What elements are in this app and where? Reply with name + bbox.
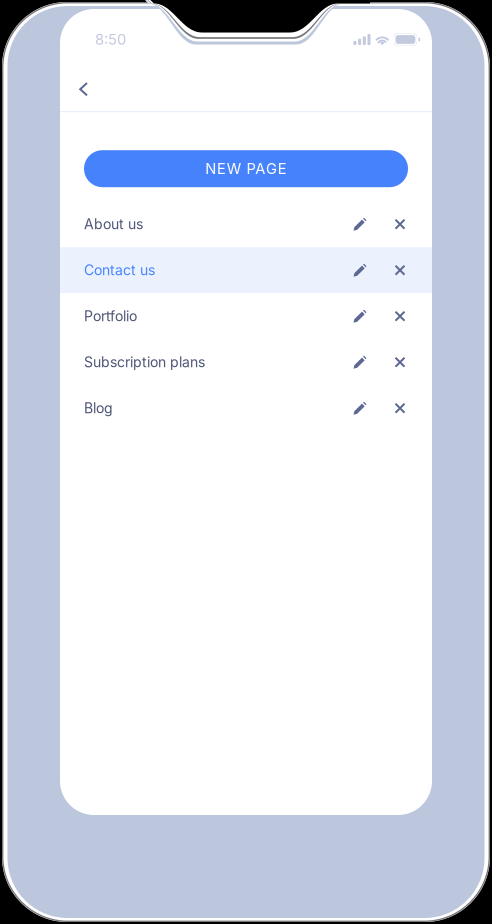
button[interactable]: Back (66, 70, 100, 108)
button[interactable]: About us (60, 201, 432, 247)
button[interactable]: Contact us (60, 247, 432, 293)
button[interactable]: Blog (60, 385, 432, 431)
button[interactable]: Subscription plans (60, 339, 432, 385)
button[interactable]: Delete Blog (380, 385, 420, 431)
staticText: Portfolio (84, 308, 137, 325)
staticText: Subscription plans (84, 354, 205, 371)
button[interactable]: Delete Subscription plans (380, 339, 420, 385)
button[interactable]: NEW PAGE (84, 150, 408, 187)
button[interactable]: Delete Portfolio (380, 293, 420, 339)
staticText: NEW PAGE (205, 160, 287, 177)
button[interactable]: Edit Blog (340, 385, 380, 431)
staticText: About us (84, 216, 143, 233)
button[interactable]: Delete About us (380, 201, 420, 247)
button[interactable]: Portfolio (60, 293, 432, 339)
button[interactable]: Edit Contact us (340, 247, 380, 293)
button[interactable]: Edit Subscription plans (340, 339, 380, 385)
staticText: 8:50 (95, 31, 126, 48)
staticText: Blog (84, 400, 113, 417)
button[interactable]: Edit Portfolio (340, 293, 380, 339)
button[interactable]: Delete Contact us (380, 247, 420, 293)
button[interactable]: Edit About us (340, 201, 380, 247)
staticText: Contact us (84, 262, 155, 279)
